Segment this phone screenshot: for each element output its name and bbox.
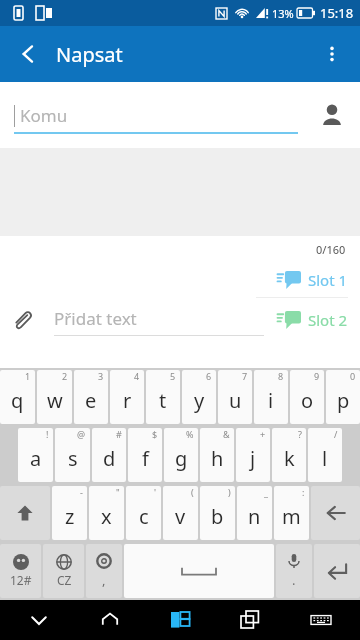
staticText: 2 — [62, 370, 68, 382]
staticText: $ — [152, 428, 158, 440]
staticText: k — [284, 445, 295, 472]
button[interactable]: Settings — [86, 544, 122, 598]
button[interactable]: 6 — [182, 370, 216, 424]
staticText: 0/160 — [316, 242, 346, 257]
staticText: - — [80, 486, 83, 498]
staticText: t — [159, 387, 167, 414]
staticText: j — [250, 445, 256, 472]
button[interactable]: 3 — [74, 370, 108, 424]
button[interactable]: / — [308, 428, 342, 482]
staticText: 5 — [170, 370, 176, 382]
staticText: x — [101, 503, 112, 530]
button[interactable]: ) — [200, 486, 235, 540]
staticText: Přidat text — [54, 307, 137, 330]
button[interactable]: 9 — [290, 370, 324, 424]
button[interactable]: Backspace — [311, 486, 360, 540]
button[interactable]: Recents — [219, 600, 281, 640]
staticText: @ — [77, 428, 86, 440]
staticText: 15:18 — [320, 4, 354, 22]
staticText: d — [103, 445, 116, 472]
staticText: # — [116, 428, 122, 440]
staticText: s — [68, 445, 78, 472]
staticText: , — [102, 571, 106, 589]
button[interactable]: _ — [237, 486, 272, 540]
staticText: q — [11, 387, 24, 414]
button[interactable]: ! — [18, 428, 53, 482]
staticText: w — [47, 387, 63, 414]
staticText: y — [194, 387, 205, 414]
button[interactable]: Home — [79, 600, 141, 640]
button[interactable]: ' — [126, 486, 161, 540]
staticText: m — [282, 503, 301, 530]
button[interactable]: Shift — [0, 486, 50, 540]
button[interactable]: Symbols — [0, 544, 41, 598]
staticText: c — [139, 503, 149, 530]
button[interactable]: 5 — [146, 370, 180, 424]
button[interactable]: Voice input — [276, 544, 312, 598]
staticText: 4 — [134, 370, 140, 382]
staticText: / — [334, 428, 338, 440]
staticText: i — [268, 387, 274, 414]
staticText: : — [302, 486, 305, 498]
staticText: ' — [154, 486, 157, 498]
button[interactable]: Slot 2 — [277, 310, 348, 330]
button[interactable]: - — [52, 486, 87, 540]
staticText: o — [301, 387, 314, 414]
button[interactable]: Slot 1 — [277, 270, 348, 290]
staticText: e — [85, 387, 97, 414]
staticText: Slot 2 — [308, 310, 348, 330]
button[interactable]: % — [164, 428, 198, 482]
button[interactable]: 2 — [37, 370, 72, 424]
button[interactable]: ? — [272, 428, 306, 482]
button[interactable]: ( — [163, 486, 198, 540]
button[interactable]: 0 — [326, 370, 360, 424]
staticText: h — [211, 445, 224, 472]
staticText: 0 — [350, 370, 356, 382]
button[interactable]: Enter — [314, 544, 360, 598]
button[interactable]: 8 — [254, 370, 288, 424]
staticText: ? — [298, 428, 302, 440]
staticText: . — [292, 571, 296, 589]
staticText: Napsat — [56, 41, 123, 68]
button[interactable]: @ — [55, 428, 90, 482]
staticText: CZ — [57, 572, 72, 588]
button[interactable]: 7 — [218, 370, 252, 424]
staticText: l — [322, 445, 328, 472]
button[interactable]: : — [274, 486, 309, 540]
staticText: ) — [228, 486, 231, 498]
button[interactable]: Change language — [43, 544, 84, 598]
staticText: _ — [264, 486, 268, 498]
staticText: & — [223, 428, 230, 440]
button[interactable]: 4 — [110, 370, 144, 424]
button[interactable]: & — [200, 428, 234, 482]
staticText: % — [186, 428, 194, 440]
button[interactable]: More options — [304, 26, 360, 82]
staticText: 9 — [314, 370, 320, 382]
staticText: " — [116, 486, 120, 498]
staticText: 1 — [25, 370, 31, 382]
staticText: u — [229, 387, 242, 414]
button[interactable]: Split screen — [149, 600, 211, 640]
staticText: 7 — [242, 370, 248, 382]
staticText: f — [142, 445, 149, 472]
button[interactable]: Attach — [0, 298, 44, 342]
staticText: Slot 1 — [308, 270, 348, 290]
button[interactable]: + — [236, 428, 270, 482]
button[interactable]: 1 — [0, 370, 35, 424]
button[interactable]: $ — [128, 428, 162, 482]
staticText: p — [337, 387, 350, 414]
staticText: v — [175, 503, 186, 530]
button[interactable]: " — [89, 486, 124, 540]
staticText: a — [30, 445, 42, 472]
button[interactable]: Pick contact — [310, 93, 354, 137]
button[interactable]: Space — [124, 544, 274, 598]
button[interactable]: Back — [0, 26, 56, 82]
staticText: 12# — [10, 572, 32, 588]
staticText: z — [65, 503, 75, 530]
staticText: 3 — [98, 370, 104, 382]
button[interactable]: Back — [8, 600, 70, 640]
button[interactable]: # — [92, 428, 126, 482]
staticText: n — [248, 503, 261, 530]
button[interactable]: Hide keyboard — [290, 600, 352, 640]
staticText: 6 — [206, 370, 212, 382]
